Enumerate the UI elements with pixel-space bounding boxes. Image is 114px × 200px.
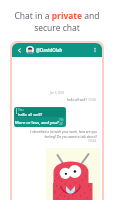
staticText: I identified a lot with your work, how a…	[30, 130, 97, 139]
staticText: @DavidOlah	[36, 47, 63, 53]
staticText: hello all well?	[18, 112, 43, 117]
staticText: 10:20	[88, 98, 97, 102]
staticText: 10:24	[88, 139, 97, 143]
staticText: More or less, and you?	[15, 120, 59, 126]
staticText: Jan 9, 2024	[12, 91, 102, 95]
button[interactable]: More options	[90, 45, 100, 55]
staticText: hello all well?	[67, 98, 87, 102]
button[interactable]: Back	[15, 46, 24, 55]
staticText: You	[18, 108, 24, 112]
staticText: Chat in a private and secure chat	[0, 10, 114, 34]
staticText: 10:22	[59, 118, 65, 126]
